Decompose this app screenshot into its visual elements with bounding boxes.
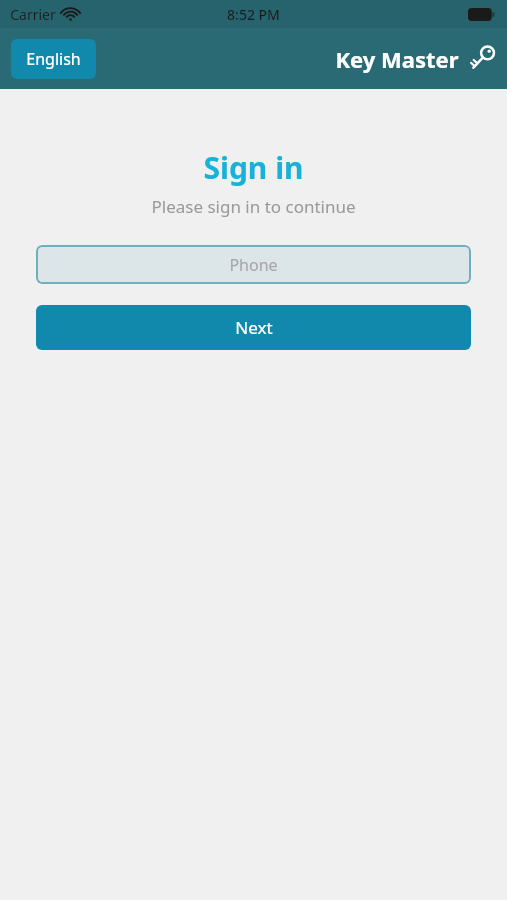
staticText: Phone [229, 254, 278, 276]
staticText: Next [235, 316, 273, 339]
staticText: Carrier [10, 5, 56, 24]
staticText: Please sign in to continue [151, 195, 356, 218]
staticText: English [26, 48, 81, 70]
staticText: Sign in [203, 147, 304, 188]
button[interactable]: English [11, 39, 96, 79]
button[interactable]: Key Master [335, 44, 497, 74]
other: Key Master [467, 44, 497, 74]
button[interactable]: Next [36, 305, 471, 350]
staticText: 8:52 PM [227, 5, 280, 24]
staticText: Key Master [335, 44, 459, 74]
button[interactable]: Phone [36, 245, 471, 284]
